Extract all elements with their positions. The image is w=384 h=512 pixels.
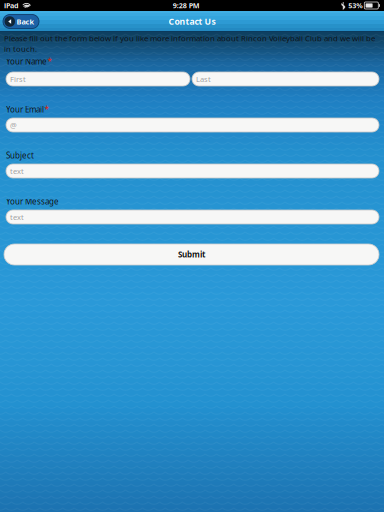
button[interactable]: text bbox=[6, 210, 379, 224]
staticText: text bbox=[10, 166, 24, 176]
staticText: Last bbox=[196, 74, 211, 84]
button[interactable]: @ bbox=[6, 118, 379, 132]
staticText: Contact Us bbox=[168, 16, 215, 27]
staticText: * bbox=[47, 56, 51, 67]
staticText: 53% bbox=[348, 1, 362, 10]
button[interactable]: Back bbox=[3, 14, 39, 28]
staticText: @ bbox=[10, 120, 17, 130]
staticText: Your Message bbox=[6, 196, 59, 207]
button[interactable]: Submit bbox=[4, 244, 379, 265]
staticText: Your Name bbox=[6, 56, 47, 67]
staticText: 9:28 PM bbox=[173, 1, 200, 10]
staticText: text bbox=[10, 212, 24, 222]
button[interactable]: Last bbox=[192, 72, 379, 86]
staticText: Back bbox=[16, 16, 34, 27]
staticText: Submit bbox=[178, 249, 205, 260]
staticText: Subject bbox=[6, 150, 34, 161]
staticText: First bbox=[10, 74, 26, 84]
button[interactable]: text bbox=[6, 164, 379, 178]
staticText: iPad bbox=[4, 1, 19, 10]
staticText: Please fill out the form below if you li… bbox=[4, 33, 375, 54]
staticText: * bbox=[44, 104, 48, 115]
button[interactable]: First bbox=[6, 72, 190, 86]
staticText: Your Email bbox=[6, 104, 44, 115]
